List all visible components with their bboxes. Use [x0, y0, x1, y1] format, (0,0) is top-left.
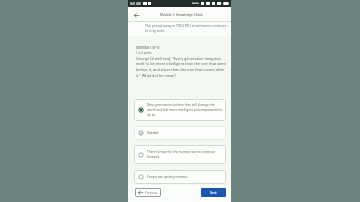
- staticText: 1 to 2 points: [136, 51, 152, 55]
- button[interactable]: There is hope for the human race to cont…: [134, 145, 226, 164]
- staticText: Module 1: Knowledge Check: [160, 13, 203, 17]
- button[interactable]: Next: [201, 188, 226, 197]
- button[interactable]: Correct: [134, 126, 226, 140]
- staticText: 9:41 AM: [130, 2, 141, 6]
- staticText: New generations believe they will change…: [147, 103, 223, 117]
- staticText: Next: [210, 191, 217, 195]
- button[interactable]: Back: [131, 10, 141, 20]
- staticText: There is hope for the human race to cont…: [147, 150, 223, 159]
- staticText: People are getting smarter.: [147, 175, 188, 179]
- staticText: George Orwell said, “Every generation im…: [136, 56, 226, 78]
- button[interactable]: New generations believe they will change…: [134, 99, 226, 121]
- button[interactable]: People are getting smarter.: [134, 170, 226, 184]
- button[interactable]: Previous: [135, 188, 161, 197]
- staticText: QUESTION 1 OF 10: [136, 46, 160, 50]
- staticText: The period away in TROLTRU enrichment co…: [145, 23, 227, 33]
- staticText: Correct: [147, 131, 159, 135]
- staticText: Previous: [145, 191, 158, 195]
- staticText: ▪▪▪▪: [192, 2, 200, 5]
